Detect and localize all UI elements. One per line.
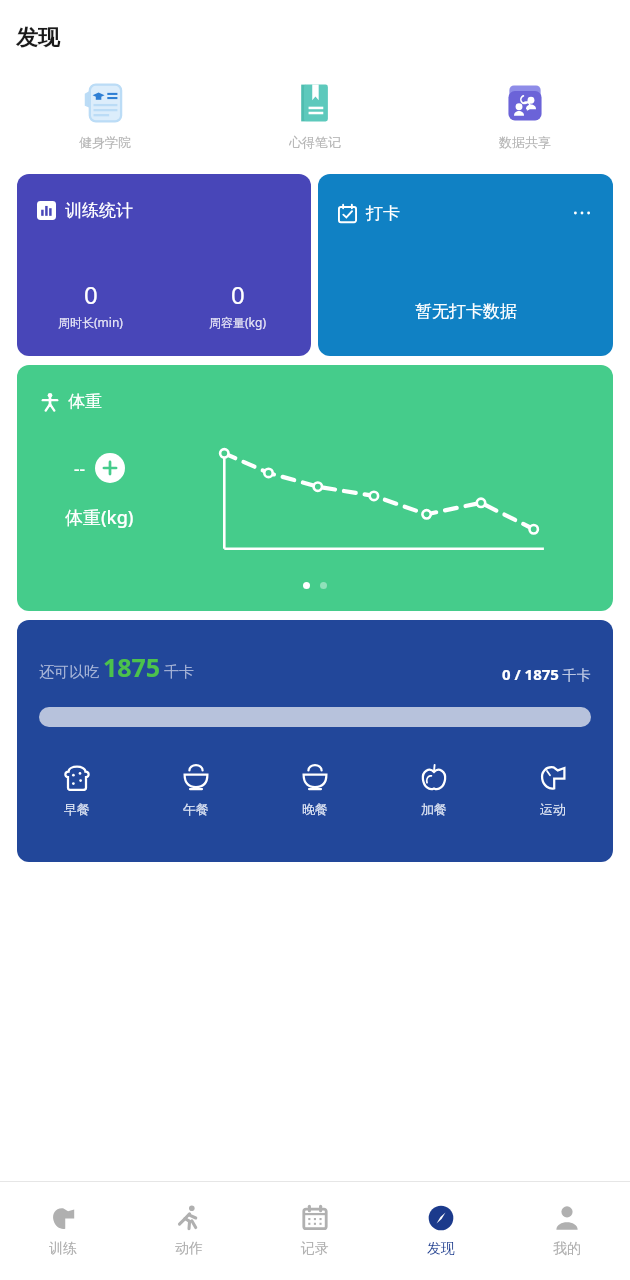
staticText: 午餐 [183, 801, 209, 817]
staticText: 数据共享 [499, 134, 551, 150]
staticText: 暂无打卡数据 [415, 301, 517, 322]
button[interactable]: Add weight [95, 453, 125, 483]
staticText: 早餐 [64, 801, 90, 817]
staticText: 动作 [175, 1240, 203, 1258]
staticText: 训练统计 [65, 200, 133, 221]
button[interactable]: 发现 [378, 1182, 504, 1280]
staticText: 体重(kg) [65, 505, 134, 530]
button[interactable]: 训练 [0, 1182, 126, 1280]
staticText: 发现 [427, 1240, 455, 1258]
button[interactable]: 心得笔记 [265, 78, 365, 152]
button[interactable]: 健身学院 [55, 78, 155, 152]
button[interactable]: 我的 [504, 1182, 630, 1280]
staticText: 周时长(min) [58, 314, 123, 330]
button[interactable]: 加餐 [395, 760, 473, 819]
button[interactable]: More options [569, 200, 595, 226]
button[interactable]: 晚餐 [276, 760, 354, 819]
staticText: 还可以吃 1875 千卡 [39, 650, 195, 684]
staticText: 记录 [301, 1240, 329, 1258]
button[interactable]: 动作 [126, 1182, 252, 1280]
button[interactable]: 运动 [514, 760, 592, 819]
button[interactable]: 午餐 [157, 760, 235, 819]
button[interactable]: 早餐 [38, 760, 116, 819]
button[interactable]: 训练统计 [17, 174, 311, 356]
button[interactable]: 还可以吃 1875 千卡 [17, 620, 613, 862]
staticText: 0 [84, 278, 98, 311]
staticText: 打卡 [366, 203, 400, 224]
button[interactable]: 体重 [17, 365, 613, 611]
staticText: 加餐 [421, 801, 447, 817]
staticText: 心得笔记 [289, 134, 341, 150]
staticText: 运动 [540, 801, 566, 817]
button[interactable]: 打卡 [318, 174, 613, 356]
staticText: 体重 [68, 391, 102, 412]
button[interactable]: 记录 [252, 1182, 378, 1280]
staticText: 晚餐 [302, 801, 328, 817]
staticText: 健身学院 [79, 134, 131, 150]
staticText: -- [74, 457, 85, 480]
staticText: 发现 [16, 24, 60, 52]
staticText: 训练 [49, 1240, 77, 1258]
staticText: 周容量(kg) [209, 314, 266, 330]
button[interactable]: 数据共享 [475, 78, 575, 152]
staticText: 我的 [553, 1240, 581, 1258]
staticText: 0 [231, 278, 245, 311]
staticText: 0 / 1875 千卡 [502, 664, 591, 684]
